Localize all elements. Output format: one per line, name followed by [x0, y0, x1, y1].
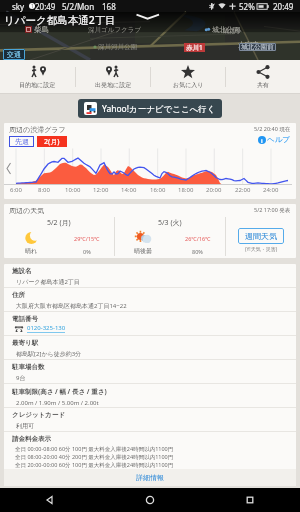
staticText: 請金料金表示 [12, 435, 51, 443]
button[interactable]: お気に入り [151, 60, 225, 93]
staticText: 週間天気 [245, 231, 277, 241]
staticText: 住所 [12, 291, 25, 299]
staticText: 大阪府大阪市都島区都島本通2丁目14−22 [16, 302, 127, 310]
staticText: Yahoo!カーナビでここへ行く [102, 103, 216, 115]
staticText: 全日 08:00-20:00 40分 200円 最大料金入庫後24時間以内110… [15, 453, 174, 461]
button[interactable]: 駐車制限(高さ / 幅 / 長さ / 重さ) [4, 384, 296, 407]
staticText: 城北公園 [212, 25, 240, 34]
button[interactable]: 目的地に設定 [0, 60, 75, 93]
button[interactable]: 詳細情報 [4, 469, 296, 486]
staticText: 目的地に設定 [19, 81, 56, 89]
button[interactable]: 最寄り駅 [4, 336, 296, 359]
button[interactable]: 2(月) [37, 136, 67, 147]
staticText: 6:00 [10, 186, 22, 194]
button[interactable]: 先週 [9, 136, 34, 147]
button[interactable]: 共有 [226, 60, 300, 93]
staticText: 8:00 [38, 186, 50, 194]
staticText: 0120-325-130 [27, 324, 66, 332]
button[interactable]: i [258, 135, 291, 144]
staticText: 26℃/16℃ [185, 235, 211, 242]
staticText: 城北公園前 [241, 43, 274, 51]
button[interactable]: Home [100, 488, 200, 512]
staticText: 5/2/Mon [62, 1, 95, 12]
staticText: 20:49 [35, 1, 56, 12]
staticText: 18:00 [178, 186, 194, 194]
button[interactable]: 住所 [4, 288, 296, 311]
staticText: 大宮中 [238, 40, 259, 49]
staticText: 施設名 [12, 267, 32, 275]
button[interactable]: 施設名 [4, 264, 296, 287]
staticText: 0% [83, 248, 91, 255]
staticText: 5/3 (火) [158, 218, 182, 228]
staticText: 都島駅[2]から徒歩約3分 [16, 350, 82, 358]
staticText: 5/2 17:00 発表 [254, 206, 291, 214]
staticText: 9台 [16, 374, 26, 382]
staticText: 深川ゴルフクラブ [88, 26, 141, 34]
staticText: 晴後曇 [134, 247, 152, 255]
staticText: 全日 00:00-08:00 60分 100円 最大料金入庫後24時間以内110… [15, 445, 174, 453]
staticText: 全日 20:00-00:00 60分 100円 最大料金入庫後24時間以内110… [15, 461, 174, 469]
staticText: お気に入り [173, 81, 204, 89]
staticText: クレジットカード [12, 411, 66, 419]
staticText: 12:00 [93, 186, 109, 194]
staticText: 赤川1 [186, 43, 203, 52]
staticText: 5/2 20:40 現在 [254, 125, 291, 133]
staticText: 168 [102, 1, 116, 12]
staticText: ヘルプ [267, 135, 291, 144]
staticText: 利用可 [16, 422, 34, 430]
staticText: 20:49 [273, 1, 294, 12]
staticText: 22:00 [235, 186, 251, 194]
button[interactable]: 週間天気 [238, 228, 284, 244]
staticText: 16:00 [150, 186, 166, 194]
staticText: 5/2 (月) [47, 218, 71, 228]
staticText: 城北小 [222, 27, 242, 35]
staticText: 周辺の渋滞グラフ [9, 125, 66, 134]
staticText: リパーク都島本通2丁目 [4, 13, 116, 27]
button[interactable]: 出発地に設定 [76, 60, 150, 93]
staticText: i [261, 137, 263, 144]
staticText: 52% [239, 1, 255, 12]
staticText: 晴れ [25, 247, 38, 255]
staticText: 詳細情報 [136, 473, 164, 482]
staticText: 10:00 [65, 186, 81, 194]
staticText: 電話番号 [12, 315, 38, 323]
staticText: 1 [31, 3, 34, 9]
button[interactable]: Yahoo!カーナビでここへ行く [78, 99, 222, 118]
button[interactable]: クレジットカード [4, 408, 296, 431]
button[interactable]: 駐車場台数 [4, 360, 296, 383]
button[interactable]: 電話番号 [4, 312, 296, 335]
button[interactable]: Recents [200, 488, 300, 512]
staticText: 24:00 [263, 186, 279, 194]
staticText: 周辺の天気 [9, 206, 45, 215]
staticText: 14:00 [121, 186, 137, 194]
staticText: 2.00m / 1.90m / 5.00m / 2.00t [16, 399, 99, 407]
staticText: 20:00 [206, 186, 222, 194]
staticText: 共有 [257, 81, 269, 89]
staticText: (Y!天気・災害) [245, 246, 278, 253]
staticText: 80% [192, 248, 203, 255]
staticText: 交通 [7, 50, 21, 59]
staticText: 2(月) [44, 137, 60, 147]
staticText: 駐車場台数 [12, 363, 45, 371]
staticText: sky [12, 1, 25, 12]
staticText: 出発地に設定 [95, 81, 132, 89]
staticText: 深川河川公園 [98, 43, 137, 51]
staticText: 29℃/15℃ [74, 235, 100, 242]
button[interactable]: 交通 [7, 50, 21, 59]
staticText: 駐車制限(高さ / 幅 / 長さ / 重さ) [12, 387, 107, 396]
staticText: 最寄り駅 [12, 339, 39, 347]
staticText: 柴島 [34, 25, 49, 34]
staticText: 先週 [15, 137, 29, 146]
staticText: リパーク都島本通2丁目 [16, 278, 80, 286]
button[interactable]: Back [0, 488, 100, 512]
